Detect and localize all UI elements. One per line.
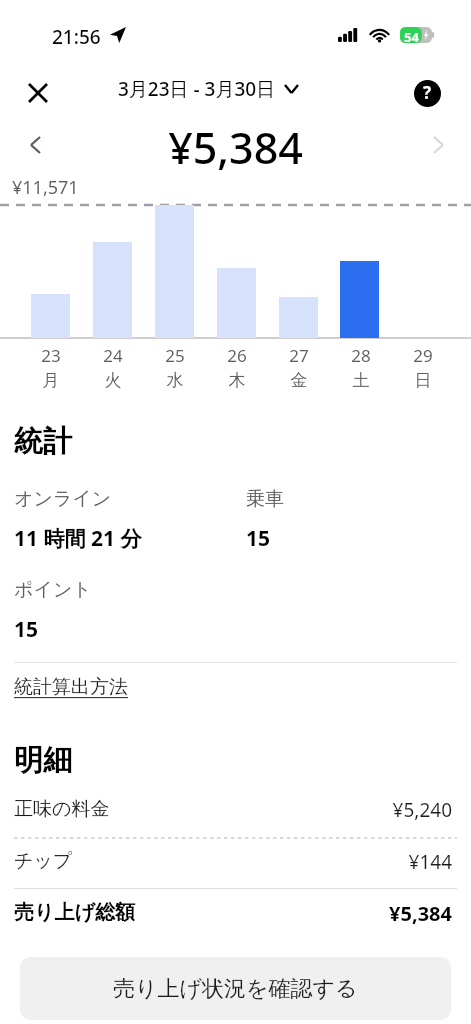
staticText: 11 時間 21 分 [14,524,142,553]
staticText: 売り上げ総額 [14,900,135,925]
staticText: 24 [89,344,137,367]
staticText: 27 [275,344,323,367]
staticText: 日 [399,370,447,391]
staticText: 29 [399,344,447,367]
staticText: ? [423,81,432,104]
staticText: 正味の料金 [14,797,110,821]
staticText: ¥144 [0,849,452,875]
staticText: 28 [337,344,385,367]
staticText: ¥5,384 [0,118,471,174]
button[interactable]: 25 [151,344,199,391]
staticText: 火 [89,370,137,391]
staticText: ¥5,384 [0,900,452,927]
button[interactable]: Help [405,71,449,115]
staticText: 統計算出方法 [14,675,128,699]
staticText: 木 [213,370,261,391]
button[interactable]: 売り上げ状況を確認する [20,957,451,1020]
button[interactable]: 統計算出方法 [14,675,128,699]
button[interactable]: 28 [337,344,385,391]
staticText: 統計 [14,423,72,460]
staticText: 15 [246,524,271,553]
button[interactable]: チップ [0,847,471,893]
staticText: 3月23日 - 3月30日 [118,76,276,102]
staticText: ¥11,571 [12,175,79,200]
button[interactable]: 26 [213,344,261,391]
button[interactable]: 3月23日 - 3月30日 [118,76,298,102]
staticText: 明細 [14,742,72,779]
staticText: チップ [14,849,73,873]
staticText: 土 [337,370,385,391]
button[interactable]: 23 [27,344,75,391]
button[interactable]: Next week [417,124,459,166]
button[interactable]: 正味の料金 [0,795,471,841]
button[interactable]: 24 [89,344,137,391]
button[interactable]: 29 [399,344,447,391]
staticText: 26 [213,344,261,367]
staticText: 売り上げ状況を確認する [113,975,358,1003]
staticText: 23 [27,344,75,367]
staticText: 水 [151,370,199,391]
staticText: 15 [14,615,39,644]
staticText: 金 [275,370,323,391]
staticText: ¥5,240 [0,797,452,823]
staticText: 21:56 [52,24,101,50]
button[interactable]: Previous week [14,124,56,166]
staticText: 月 [27,370,75,391]
staticText: ポイント [14,578,92,602]
staticText: 25 [151,344,199,367]
staticText: オンライン [14,487,112,511]
button[interactable]: 27 [275,344,323,391]
staticText: 54 [404,28,419,46]
button[interactable]: Close [16,71,60,115]
staticText: 乗車 [246,487,284,511]
